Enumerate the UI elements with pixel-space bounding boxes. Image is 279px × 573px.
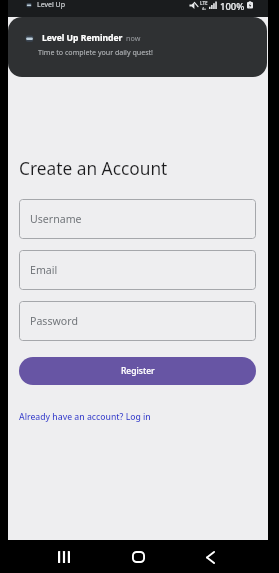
button[interactable]: Recents — [58, 551, 70, 563]
staticText: Username — [30, 212, 82, 226]
staticText: Create an Account — [19, 157, 168, 181]
staticText: 4+ — [202, 6, 207, 10]
staticText: LTE — [200, 0, 208, 6]
button[interactable]: Register — [19, 357, 256, 385]
staticText: Level Up Reminder — [42, 32, 123, 44]
button[interactable]: Username — [19, 199, 256, 239]
staticText: Time to complete your daily quest! — [38, 47, 154, 57]
staticText: Email — [30, 263, 58, 277]
button[interactable]: Already have an account? Log in — [19, 411, 151, 423]
staticText: Level Up — [37, 0, 66, 9]
staticText: now — [126, 33, 141, 43]
button[interactable]: Home — [132, 551, 145, 563]
staticText: Already have an account? Log in — [19, 411, 151, 423]
button[interactable]: Back — [206, 551, 215, 564]
staticText: Register — [121, 365, 155, 377]
button[interactable]: Level Up Reminder — [8, 17, 267, 77]
staticText: Password — [30, 314, 78, 328]
button[interactable]: Email — [19, 250, 256, 290]
staticText: 100% — [220, 0, 245, 10]
button[interactable]: Password — [19, 301, 256, 341]
